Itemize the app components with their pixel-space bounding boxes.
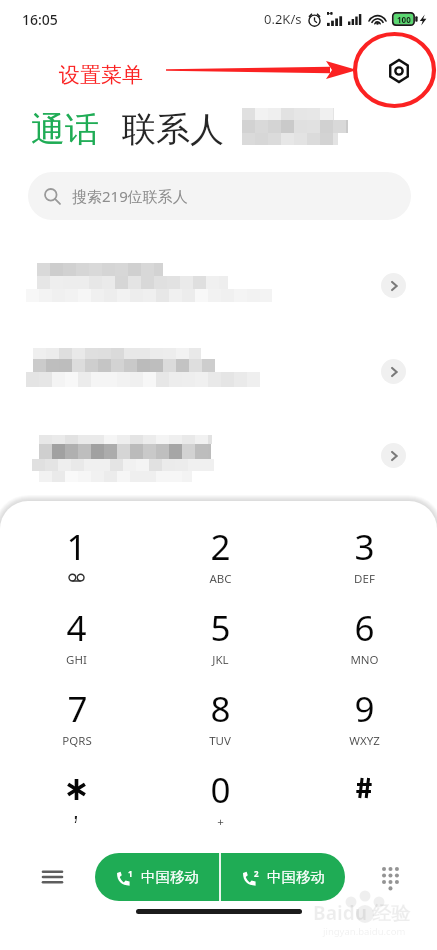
- button[interactable]: 1: [95, 853, 219, 901]
- staticText: MNO: [350, 652, 379, 668]
- staticText: 5: [210, 604, 231, 652]
- button[interactable]: 5: [148, 604, 292, 685]
- button[interactable]: 3: [292, 523, 436, 604]
- staticText: 中国移动: [141, 868, 199, 886]
- staticText: PQRS: [62, 733, 92, 749]
- button[interactable]: 设置: [377, 49, 421, 93]
- button[interactable]: 2: [221, 853, 345, 901]
- staticText: GHI: [66, 652, 87, 668]
- button[interactable]: 4: [5, 604, 148, 685]
- button[interactable]: 搜索219位联系人: [28, 172, 411, 220]
- staticText: 9: [354, 685, 375, 733]
- staticText: 4: [66, 604, 87, 652]
- button[interactable]: 查看详情: [381, 443, 406, 468]
- button[interactable]: 查看详情: [0, 420, 437, 492]
- button[interactable]: 2: [148, 523, 292, 604]
- button[interactable]: 0: [148, 766, 292, 847]
- staticText: JKL: [212, 652, 229, 668]
- button[interactable]: 查看详情: [0, 336, 437, 408]
- button[interactable]: 查看详情: [381, 273, 406, 298]
- button[interactable]: 联系人: [122, 108, 224, 151]
- staticText: 联系人: [122, 108, 224, 151]
- button[interactable]: 6: [292, 604, 436, 685]
- staticText: 搜索219位联系人: [72, 186, 188, 206]
- button[interactable]: 8: [148, 685, 292, 766]
- button[interactable]: 查看详情: [0, 250, 437, 322]
- staticText: jingyan.baidu.com: [323, 925, 406, 938]
- button[interactable]: 1: [5, 523, 148, 604]
- button[interactable]: 通话: [31, 108, 99, 151]
- button[interactable]: [292, 766, 436, 847]
- button[interactable]: 7: [5, 685, 148, 766]
- staticText: 6: [354, 604, 375, 652]
- staticText: ABC: [209, 571, 232, 587]
- staticText: 7: [67, 685, 88, 733]
- staticText: 3: [354, 523, 375, 571]
- staticText: 1: [66, 523, 87, 571]
- staticText: TUV: [209, 733, 231, 749]
- button[interactable]: 通话记录: [34, 859, 70, 895]
- staticText: 设置菜单: [59, 62, 143, 88]
- staticText: WXYZ: [349, 733, 380, 749]
- staticText: 1: [128, 868, 133, 879]
- staticText: 2: [210, 523, 231, 571]
- staticText: 2: [254, 868, 259, 879]
- staticText: 16:05: [22, 10, 58, 29]
- staticText: 中国移动: [267, 868, 325, 886]
- button[interactable]: [5, 766, 148, 847]
- staticText: 100: [397, 14, 411, 25]
- staticText: 0.2K/s: [264, 10, 302, 28]
- staticText: +: [217, 814, 224, 830]
- staticText: 8: [210, 685, 231, 733]
- staticText: 0: [210, 766, 231, 814]
- button[interactable]: 9: [292, 685, 436, 766]
- button[interactable]: 拨号键盘: [371, 859, 407, 895]
- staticText: DEF: [354, 571, 375, 587]
- staticText: Baidu 经验: [313, 900, 410, 926]
- staticText: 通话: [31, 108, 99, 151]
- button[interactable]: 查看详情: [381, 359, 406, 384]
